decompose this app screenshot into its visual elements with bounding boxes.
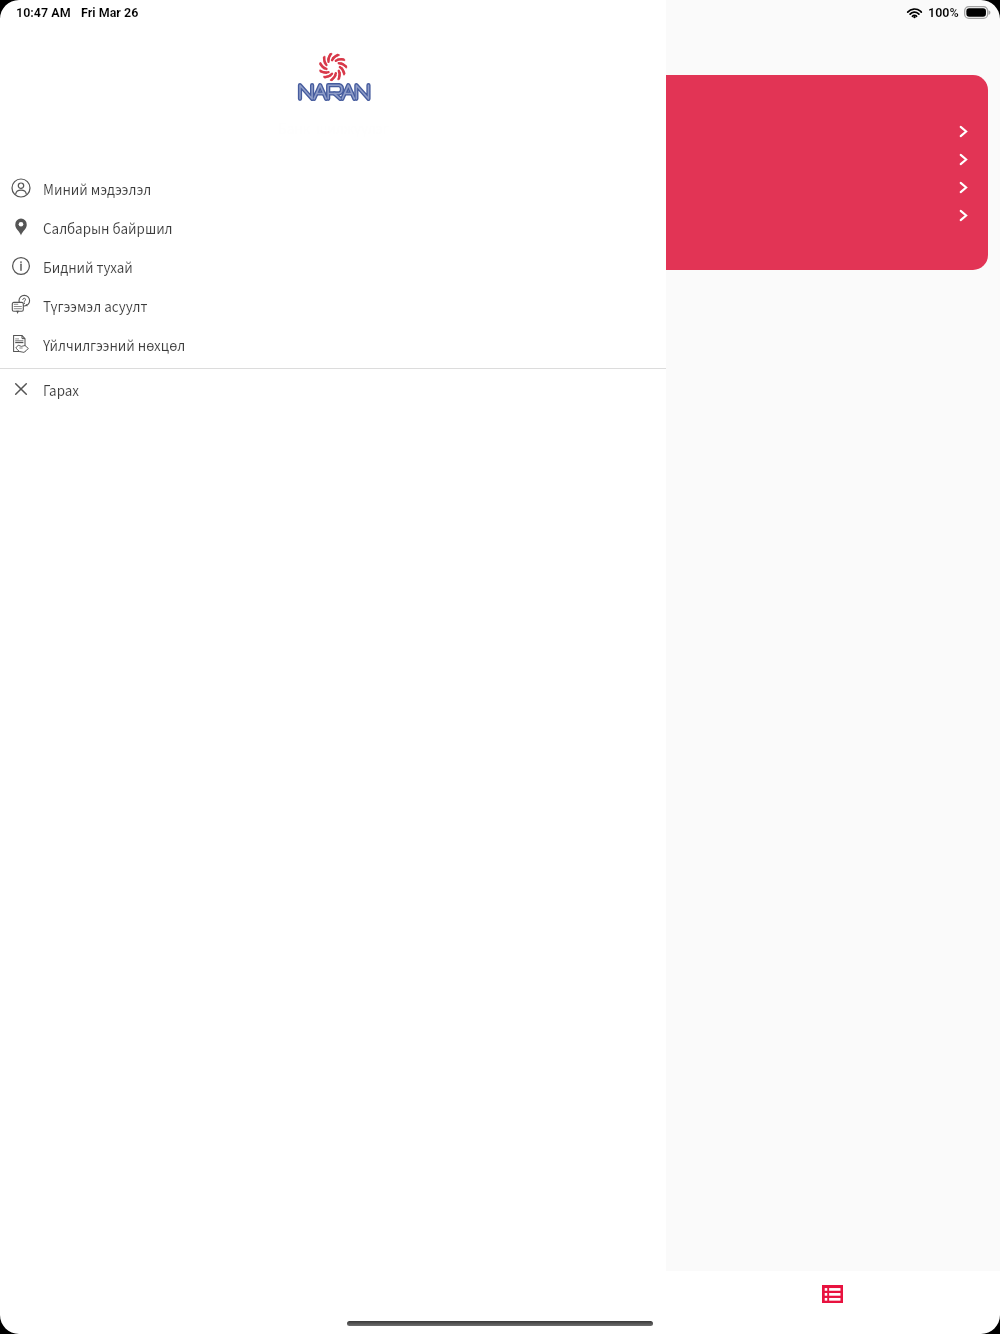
- staticText: 10:47 AM: [16, 5, 71, 20]
- staticText: Миний мэдээлэл: [43, 180, 152, 201]
- button[interactable]: Account balance: [666, 117, 988, 145]
- staticText: Салбарын байршил: [43, 219, 173, 240]
- button[interactable]: Үйлчилгээний нөхцөл: [0, 327, 666, 366]
- button[interactable]: Loan: [666, 173, 988, 201]
- button[interactable]: Салбарын байршил: [0, 210, 666, 249]
- button[interactable]: Миний мэдээлэл: [0, 171, 666, 210]
- button[interactable]: List: [812, 1274, 852, 1314]
- staticText: Түгээмэл асуулт: [43, 297, 148, 318]
- staticText: Бидний тухай: [43, 258, 133, 279]
- button[interactable]: Card: [666, 145, 988, 173]
- staticText: Гарах: [43, 381, 80, 402]
- button[interactable]: Savings: [666, 201, 988, 229]
- button[interactable]: Гарах: [0, 372, 666, 411]
- staticText: 100%: [928, 5, 959, 20]
- button[interactable]: Бидний тухай: [0, 249, 666, 288]
- button[interactable]: Түгээмэл асуулт: [0, 288, 666, 327]
- staticText: Fri Mar 26: [81, 5, 139, 20]
- staticText: Үйлчилгээний нөхцөл: [43, 336, 186, 357]
